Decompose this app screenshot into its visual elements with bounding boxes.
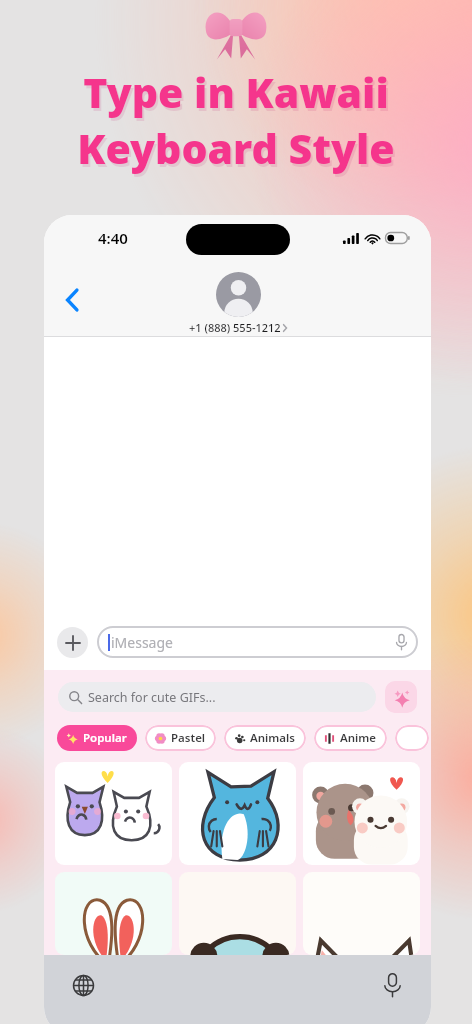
button[interactable]: Sticker: [179, 762, 296, 865]
staticText: Anime: [340, 730, 377, 746]
button[interactable]: Sticker: [303, 762, 420, 865]
button[interactable]: iMessage: [97, 626, 418, 658]
button[interactable]: Sticker: [303, 872, 420, 955]
staticText: Keyboard Style: [79, 123, 397, 179]
staticText: Animals: [250, 730, 296, 746]
staticText: Popular: [83, 730, 127, 746]
button[interactable]: Sticker: [179, 872, 296, 955]
button[interactable]: Sticker: [55, 872, 172, 955]
staticText: Keyboard Style: [77, 120, 395, 176]
button[interactable]: Popular: [57, 725, 137, 751]
staticText: Pastel: [171, 730, 206, 746]
staticText: 4:40: [98, 228, 128, 248]
staticText: +1 (888) 555-1212: [189, 320, 281, 335]
button[interactable]: Pastel: [145, 725, 216, 751]
button[interactable]: Anime: [314, 725, 387, 751]
button[interactable]: Search for cute GIFs...: [58, 682, 376, 712]
staticText: iMessage: [111, 633, 173, 652]
button[interactable]: +1 (888) 555-1212: [189, 272, 287, 335]
staticText: Type in Kawaii: [85, 67, 391, 123]
staticText: Search for cute GIFs...: [88, 689, 216, 706]
button[interactable]: Switch keyboard: [62, 964, 104, 1006]
staticText: Type in Kawaii: [83, 64, 389, 120]
button[interactable]: Sticker: [55, 762, 172, 865]
other: Pink bow: [204, 6, 268, 60]
button[interactable]: Animals: [224, 725, 306, 751]
button[interactable]: Add attachment: [57, 627, 88, 658]
button[interactable]: AI magic: [385, 681, 417, 713]
button[interactable]: Dictation: [371, 964, 413, 1006]
button[interactable]: More categories: [395, 725, 429, 751]
button[interactable]: Back: [52, 280, 92, 320]
